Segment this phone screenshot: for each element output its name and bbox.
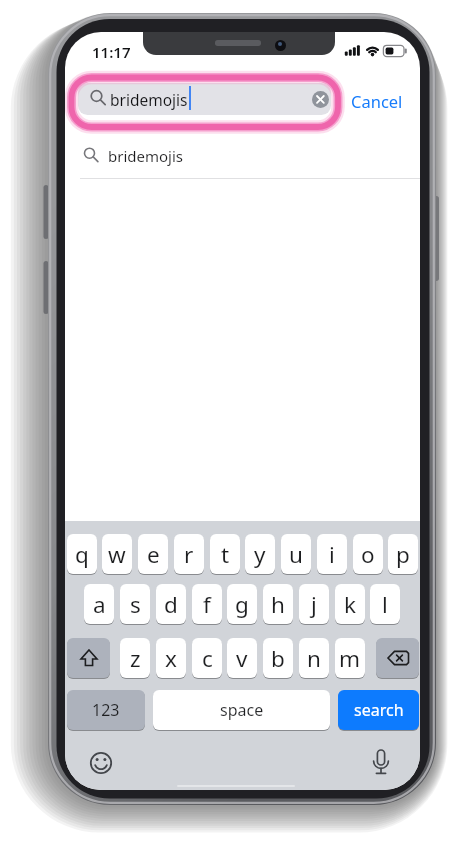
staticText: 123 bbox=[92, 699, 120, 721]
button[interactable]: Cancel bbox=[348, 85, 410, 113]
button[interactable]: n bbox=[299, 638, 329, 678]
staticText: p bbox=[396, 539, 410, 570]
button[interactable] bbox=[65, 132, 420, 178]
staticText: o bbox=[361, 539, 375, 570]
button[interactable] bbox=[78, 83, 331, 115]
staticText: u bbox=[289, 539, 303, 570]
staticText: search bbox=[354, 699, 404, 721]
button[interactable]: o bbox=[353, 534, 383, 574]
button[interactable] bbox=[376, 638, 419, 678]
button[interactable]: k bbox=[335, 584, 365, 624]
button[interactable]: search bbox=[338, 690, 419, 730]
button[interactable]: x bbox=[156, 638, 186, 678]
button[interactable]: y bbox=[245, 534, 275, 574]
staticText: n bbox=[307, 643, 321, 674]
button[interactable] bbox=[67, 638, 110, 678]
button[interactable]: h bbox=[263, 584, 293, 624]
staticText: t bbox=[221, 539, 230, 570]
staticText: s bbox=[130, 589, 141, 620]
button[interactable]: l bbox=[370, 584, 400, 624]
staticText: e bbox=[147, 539, 160, 570]
staticText: Cancel bbox=[351, 90, 403, 112]
staticText: v bbox=[236, 643, 248, 674]
staticText: bridemojis bbox=[110, 89, 188, 110]
button[interactable]: t bbox=[210, 534, 240, 574]
button[interactable]: u bbox=[281, 534, 311, 574]
button[interactable]: w bbox=[102, 534, 132, 574]
staticText: i bbox=[329, 539, 335, 570]
staticText: 11:17 bbox=[92, 42, 131, 62]
staticText: c bbox=[202, 643, 213, 674]
staticText: r bbox=[184, 539, 194, 570]
button[interactable]: q bbox=[67, 534, 97, 574]
staticText: z bbox=[130, 643, 141, 674]
staticText: h bbox=[271, 589, 285, 620]
staticText: space bbox=[220, 699, 264, 721]
staticText: y bbox=[254, 539, 266, 570]
button[interactable]: z bbox=[120, 638, 150, 678]
button[interactable]: d bbox=[156, 584, 186, 624]
button[interactable]: space bbox=[153, 690, 330, 730]
staticText: l bbox=[382, 589, 388, 620]
button[interactable]: b bbox=[263, 638, 293, 678]
staticText: g bbox=[235, 589, 249, 620]
button[interactable] bbox=[365, 747, 397, 779]
button[interactable] bbox=[312, 91, 329, 108]
button[interactable]: g bbox=[227, 584, 257, 624]
staticText: k bbox=[344, 589, 357, 620]
button[interactable] bbox=[85, 747, 117, 779]
button[interactable]: m bbox=[335, 638, 365, 678]
staticText: q bbox=[75, 539, 89, 570]
button[interactable]: p bbox=[388, 534, 418, 574]
staticText: f bbox=[203, 589, 211, 620]
staticText: d bbox=[164, 589, 178, 620]
staticText: j bbox=[311, 589, 317, 620]
button[interactable]: e bbox=[138, 534, 168, 574]
staticText: w bbox=[108, 539, 126, 570]
button[interactable]: a bbox=[84, 584, 114, 624]
button[interactable]: r bbox=[174, 534, 204, 574]
staticText: bridemojis bbox=[108, 146, 184, 166]
button[interactable]: i bbox=[317, 534, 347, 574]
button[interactable]: f bbox=[192, 584, 222, 624]
button[interactable]: 123 bbox=[67, 690, 145, 730]
button[interactable]: s bbox=[120, 584, 150, 624]
staticText: b bbox=[271, 643, 285, 674]
button[interactable]: j bbox=[299, 584, 329, 624]
staticText: a bbox=[93, 589, 106, 620]
button[interactable]: c bbox=[192, 638, 222, 678]
staticText: m bbox=[339, 643, 361, 674]
button[interactable]: v bbox=[227, 638, 257, 678]
staticText: x bbox=[165, 643, 177, 674]
